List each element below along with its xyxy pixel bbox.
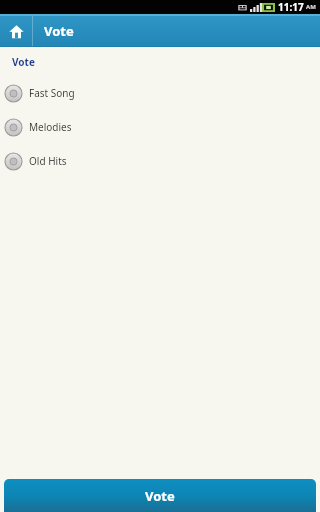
staticText: Vote [12, 55, 35, 69]
staticText: 11:17 [278, 0, 304, 14]
button[interactable]: Home [0, 16, 32, 46]
button[interactable]: Fast Song [0, 83, 320, 103]
staticText: Melodies [29, 120, 72, 134]
staticText: Vote [44, 22, 74, 40]
staticText: Old Hits [29, 154, 67, 168]
staticText: AM [306, 3, 316, 11]
button[interactable]: Vote [4, 479, 316, 512]
button[interactable]: Melodies [0, 117, 320, 137]
staticText: Vote [145, 487, 175, 505]
button[interactable]: Old Hits [0, 151, 320, 171]
staticText: Fast Song [29, 86, 75, 100]
